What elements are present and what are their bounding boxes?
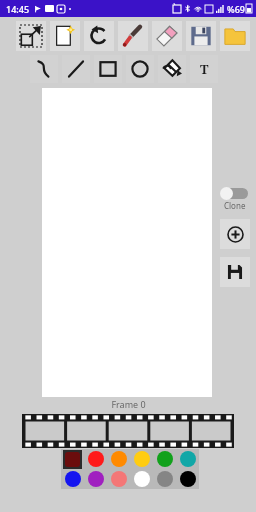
- button[interactable]: Resize canvas: [16, 21, 46, 51]
- button[interactable]: T: [190, 55, 218, 83]
- button[interactable]: Brush: [118, 21, 148, 51]
- staticText: Frame 0: [111, 398, 146, 410]
- button[interactable]: Line: [62, 55, 90, 83]
- button[interactable]: Add frame: [220, 219, 250, 249]
- button[interactable]: Clone toggle: [220, 186, 250, 200]
- button[interactable]: Undo: [84, 21, 114, 51]
- button[interactable]: Color swatch: [176, 449, 199, 469]
- button[interactable]: Circle: [126, 55, 154, 83]
- staticText: 14:45: [6, 3, 30, 15]
- staticText: Clone: [224, 200, 246, 211]
- button[interactable]: Color swatch: [84, 449, 107, 469]
- button[interactable]: Eraser: [152, 21, 182, 51]
- button[interactable]: [22, 414, 234, 448]
- button[interactable]: Open: [220, 21, 250, 51]
- button[interactable]: Color swatch: [107, 449, 130, 469]
- button[interactable]: Color swatch: [107, 469, 130, 489]
- button[interactable]: Freehand curve: [30, 55, 58, 83]
- button[interactable]: Color swatch: [130, 449, 153, 469]
- button[interactable]: Save: [186, 21, 216, 51]
- button[interactable]: Rectangle: [94, 55, 122, 83]
- button[interactable]: Color swatch: [153, 469, 176, 489]
- button[interactable]: Color swatch: [176, 469, 199, 489]
- button[interactable]: Color swatch: [84, 469, 107, 489]
- button[interactable]: Color swatch: [130, 469, 153, 489]
- button[interactable]: Color swatch: [153, 449, 176, 469]
- staticText: %69: [227, 3, 245, 15]
- button[interactable]: Fill: [158, 55, 186, 83]
- button[interactable]: Color swatch: [61, 469, 84, 489]
- button[interactable]: Color swatch: [61, 449, 84, 469]
- button[interactable]: Save animation: [220, 257, 250, 287]
- button[interactable]: New drawing: [50, 21, 80, 51]
- staticText: T: [200, 60, 209, 78]
